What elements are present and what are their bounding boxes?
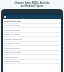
button[interactable]: Abdominal Pain <box>3 19 61 24</box>
button[interactable]: Acid Reflux Diet <box>3 24 61 28</box>
button[interactable]: Allergy Symptoms <box>3 37 61 42</box>
button[interactable]: Anemia Causes <box>3 46 61 51</box>
staticText: on Medical Topics <box>0 4 64 8</box>
staticText: Asthma Attacks <box>4 60 20 63</box>
button[interactable]: Asthma Attacks <box>3 60 61 64</box>
button[interactable]: ADHD in Adults <box>3 33 61 37</box>
staticText: Choose from 4000+ Articles <box>0 1 64 5</box>
staticText: Acid Reflux Diet <box>4 24 21 27</box>
staticText: Abdominal Pain <box>4 20 22 23</box>
button[interactable]: Arthritis Care <box>3 55 61 60</box>
button[interactable]: Acne Treatment <box>3 28 61 33</box>
staticText: Allergy Symptoms <box>4 38 23 41</box>
button[interactable]: Anxiety Disorder <box>3 51 61 55</box>
staticText: ADHD in Adults <box>4 33 20 36</box>
staticText: Anxiety Disorder <box>4 51 22 54</box>
staticText: Anemia Causes <box>4 47 20 50</box>
staticText: Arthritis Care <box>4 56 18 59</box>
staticText: Alzheimer Care <box>4 42 20 45</box>
staticText: Acne Treatment <box>4 29 21 32</box>
button[interactable]: Alzheimer Care <box>3 42 61 46</box>
